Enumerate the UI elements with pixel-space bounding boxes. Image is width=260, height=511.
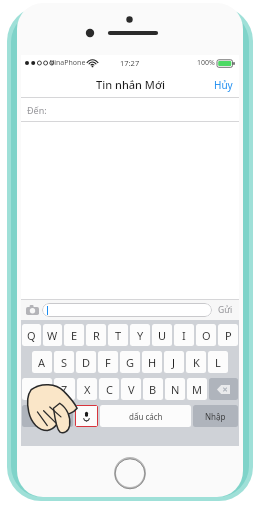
button[interactable]: W	[43, 324, 62, 346]
staticText: E	[71, 328, 78, 343]
staticText: V	[128, 382, 135, 397]
button[interactable]: Gửi	[215, 302, 236, 318]
button[interactable]: M	[187, 378, 207, 400]
button[interactable]: Change keyboard language	[50, 405, 73, 427]
staticText: L	[215, 355, 221, 370]
button[interactable]: Z	[54, 378, 75, 400]
staticText: A	[38, 355, 46, 370]
staticText: O	[202, 328, 211, 343]
staticText: Nhập	[205, 411, 226, 422]
staticText: I	[182, 328, 186, 343]
button[interactable]: U	[152, 324, 172, 346]
button[interactable]: T	[108, 324, 128, 346]
staticText: R	[93, 328, 100, 343]
staticText: 100%	[197, 58, 215, 68]
staticText: 123	[29, 411, 42, 421]
button[interactable]: R	[86, 324, 106, 346]
staticText: J	[172, 355, 176, 370]
button[interactable]: J	[164, 351, 184, 373]
staticText: H	[148, 355, 157, 370]
button[interactable]: 123	[22, 405, 48, 427]
staticText: D	[82, 355, 91, 370]
button[interactable]: O	[196, 324, 216, 346]
staticText: Y	[137, 328, 144, 343]
staticText: W	[47, 328, 58, 343]
staticText: U	[158, 328, 167, 343]
button[interactable]: A	[32, 351, 52, 373]
button[interactable]: H	[142, 351, 162, 373]
button[interactable]: G	[120, 351, 140, 373]
button[interactable]: F	[98, 351, 118, 373]
button[interactable]: Hủy	[208, 74, 239, 96]
staticText: N	[171, 382, 180, 397]
button[interactable]: V	[121, 378, 141, 400]
staticText: X	[84, 382, 91, 397]
button[interactable]: C	[99, 378, 119, 400]
button[interactable]: K	[186, 351, 206, 373]
button[interactable]: Camera	[24, 302, 40, 318]
button[interactable]: D	[76, 351, 96, 373]
button[interactable]: Đến:	[21, 98, 239, 122]
button[interactable]: B	[143, 378, 163, 400]
staticText: P	[225, 328, 232, 343]
button[interactable]: I	[174, 324, 194, 346]
staticText: Q	[27, 328, 36, 343]
staticText: G	[126, 355, 135, 370]
staticText: Gửi	[218, 304, 233, 316]
staticText: Đến:	[27, 104, 47, 116]
staticText: S	[61, 355, 68, 370]
button[interactable]: Y	[130, 324, 150, 346]
button[interactable]: Dictation microphone	[75, 405, 98, 427]
staticText: T	[115, 328, 122, 343]
staticText: F	[105, 355, 111, 370]
button[interactable]: dấu cách	[100, 405, 191, 427]
button[interactable]: S	[54, 351, 74, 373]
button[interactable]: Q	[22, 324, 41, 346]
staticText: dấu cách	[129, 411, 163, 422]
button[interactable]: X	[77, 378, 97, 400]
staticText: M	[192, 382, 202, 397]
staticText: Hủy	[214, 78, 233, 92]
button[interactable]: Nhập	[193, 405, 238, 427]
button[interactable]: N	[165, 378, 185, 400]
button[interactable]: L	[208, 351, 228, 373]
button[interactable]: Backspace	[209, 378, 238, 400]
button[interactable]	[42, 303, 212, 317]
staticText: 17:27	[120, 58, 140, 68]
staticText: Tin nhắn Mới	[96, 77, 165, 92]
staticText: B	[149, 382, 157, 397]
staticText: K	[193, 355, 200, 370]
staticText: Z	[61, 382, 68, 397]
button[interactable]: Shift	[22, 378, 52, 400]
button[interactable]: E	[64, 324, 84, 346]
staticText: C	[106, 382, 113, 397]
button[interactable]: P	[218, 324, 238, 346]
staticText: VinaPhone	[50, 58, 86, 68]
